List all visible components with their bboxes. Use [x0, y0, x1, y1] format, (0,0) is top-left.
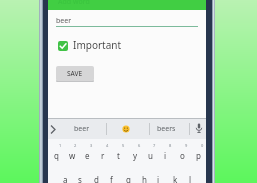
staticText: j: [157, 174, 160, 183]
staticText: w: [69, 150, 76, 161]
staticText: q: [54, 150, 59, 161]
staticText: SAVE: [67, 69, 83, 78]
staticText: 3: [90, 143, 93, 148]
staticText: l: [189, 174, 192, 183]
staticText: s: [78, 174, 82, 183]
staticText: 4: [106, 143, 109, 148]
staticText: beers: [157, 124, 176, 134]
staticText: f: [110, 174, 113, 183]
staticText: 0: [201, 143, 204, 148]
staticText: a: [63, 174, 68, 183]
staticText: beer: [56, 16, 72, 26]
staticText: i: [164, 150, 167, 161]
staticText: e: [85, 150, 90, 161]
button[interactable]: SAVE: [56, 66, 94, 81]
staticText: 7: [153, 143, 156, 148]
staticText: Important: [73, 38, 122, 52]
staticText: g: [126, 174, 131, 183]
staticText: k: [173, 174, 178, 183]
staticText: o: [180, 150, 185, 161]
button[interactable]: [58, 41, 68, 51]
staticText: 2: [74, 143, 77, 148]
staticText: p: [196, 150, 201, 161]
staticText: h: [142, 174, 147, 183]
staticText: 5: [122, 143, 125, 148]
staticText: 6: [138, 143, 141, 148]
staticText: t: [117, 150, 120, 161]
staticText: y: [133, 150, 138, 161]
staticText: 1: [59, 143, 62, 148]
staticText: beer: [74, 124, 90, 134]
staticText: d: [94, 174, 99, 183]
staticText: 9: [185, 143, 188, 148]
staticText: 8: [169, 143, 172, 148]
staticText: r: [101, 150, 105, 161]
staticText: u: [148, 150, 153, 161]
